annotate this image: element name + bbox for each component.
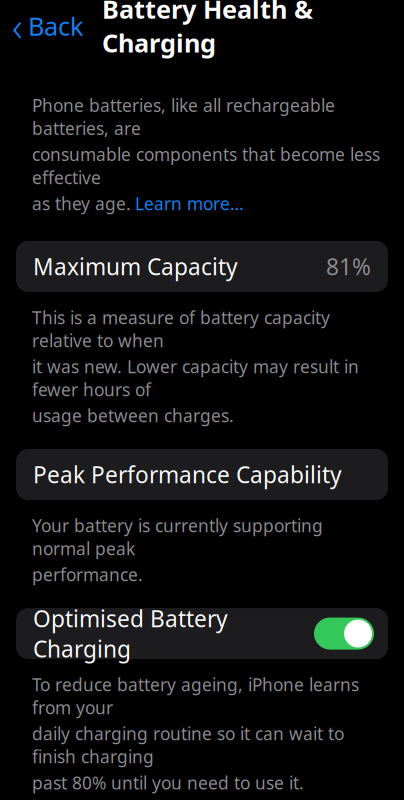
staticText: performance. bbox=[32, 563, 143, 586]
staticText: Maximum Capacity bbox=[33, 251, 238, 281]
staticText: usage between charges. bbox=[32, 404, 234, 427]
button[interactable]: Learn more… bbox=[135, 192, 244, 215]
staticText: 81% bbox=[326, 251, 371, 281]
staticText: Peak Performance Capability bbox=[33, 459, 342, 490]
staticText: Optimised Battery Charging bbox=[33, 603, 228, 664]
staticText: Your battery is currently supporting nor… bbox=[32, 514, 323, 560]
button[interactable]: Maximum Capacity bbox=[16, 241, 388, 292]
staticText: past 80% until you need to use it. bbox=[32, 771, 304, 794]
staticText: Phone batteries, like all rechargeable b… bbox=[32, 94, 335, 140]
staticText: Back bbox=[28, 9, 84, 43]
button[interactable]: Peak Performance Capability bbox=[16, 449, 388, 500]
staticText: Battery Health & Charging bbox=[102, 0, 313, 59]
staticText: To reduce battery ageing, iPhone learns … bbox=[32, 673, 359, 719]
staticText: This is a measure of battery capacity re… bbox=[32, 306, 330, 352]
button[interactable]: Optimised Battery Charging bbox=[16, 608, 388, 659]
button[interactable]: ‹ bbox=[0, 0, 90, 54]
staticText: it was new. Lower capacity may result in… bbox=[32, 355, 359, 401]
staticText: Learn more… bbox=[135, 192, 244, 215]
staticText: as they age. bbox=[32, 192, 131, 215]
staticText: daily charging routine so it can wait to… bbox=[32, 722, 344, 768]
staticText: consumable components that become less e… bbox=[32, 143, 380, 189]
staticText: ‹ bbox=[12, 0, 23, 52]
